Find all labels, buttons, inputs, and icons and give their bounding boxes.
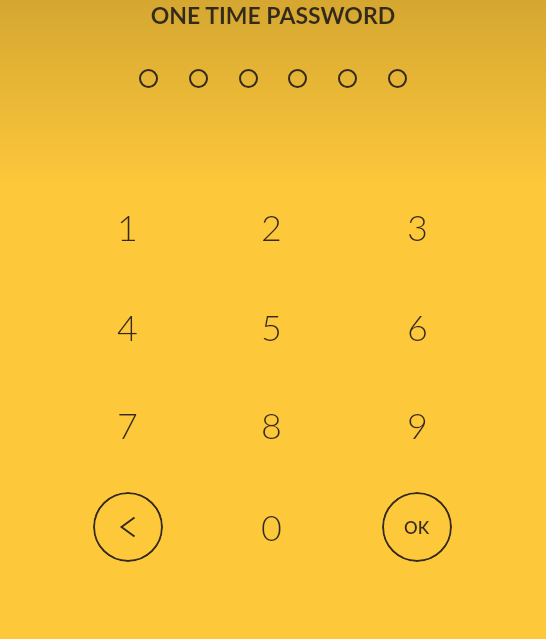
staticText: 0 [261,505,282,548]
staticText: 8 [261,403,282,446]
staticText: 9 [407,403,428,446]
button[interactable]: Backspace [93,492,163,562]
staticText: 5 [261,305,282,348]
staticText: ONE TIME PASSWORD [0,1,546,639]
button[interactable]: 4 [91,290,163,362]
button[interactable]: 5 [235,290,307,362]
button[interactable]: 8 [235,388,307,460]
staticText: 4 [117,305,138,348]
button[interactable]: 9 [381,388,453,460]
button[interactable]: 1 [91,190,163,262]
staticText: 6 [407,305,428,348]
button[interactable]: 3 [381,190,453,262]
staticText: OK [404,517,430,537]
staticText: 2 [261,205,282,248]
staticText: 3 [407,205,428,248]
button[interactable]: 2 [235,190,307,262]
staticText: 1 [117,205,138,248]
button[interactable]: 6 [381,290,453,362]
button[interactable]: OK [382,492,452,562]
button[interactable]: 0 [235,490,307,562]
staticText: 7 [117,403,138,446]
button[interactable]: 7 [91,388,163,460]
